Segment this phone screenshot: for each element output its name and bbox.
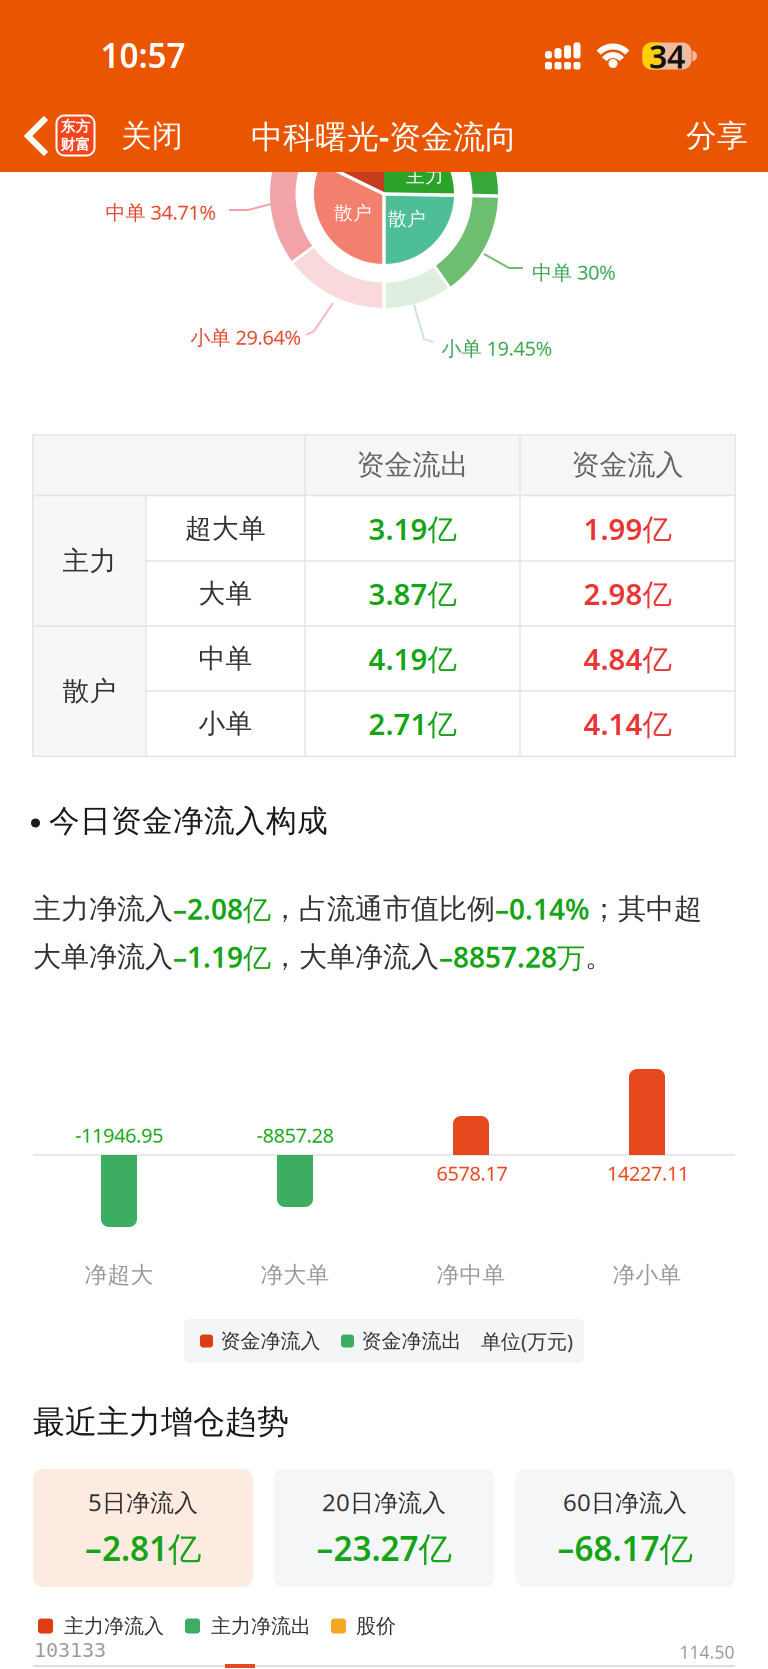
staticText: 大单净流入: [33, 940, 173, 974]
staticText: 中科曙光-资金流向: [251, 115, 517, 157]
staticText: 关闭: [121, 117, 183, 155]
staticText: 中单 30%: [532, 259, 616, 285]
staticText: 净超大: [84, 1261, 153, 1289]
staticText: –0.14%: [495, 890, 590, 928]
staticText: 单位(万元): [481, 1328, 573, 1354]
staticText: 34: [649, 35, 685, 77]
staticText: 中单: [198, 642, 252, 675]
staticText: 2.71亿: [368, 704, 456, 743]
staticText: 主力净流入: [33, 892, 173, 926]
button[interactable]: Back: [18, 108, 58, 164]
staticText: 散户: [334, 201, 372, 224]
staticText: –68.17亿: [557, 1526, 692, 1570]
button[interactable]: 东方财富: [56, 115, 94, 155]
staticText: 散户: [62, 675, 116, 707]
staticText: 超大单: [185, 512, 266, 545]
staticText: 净中单: [436, 1261, 505, 1289]
staticText: –8857.28万: [439, 938, 585, 976]
staticText: –23.27亿: [316, 1526, 451, 1570]
staticText: 4.84亿: [583, 639, 671, 678]
staticText: 2.98亿: [583, 574, 671, 613]
staticText: 103133: [34, 1638, 106, 1662]
staticText: 今日资金净流入构成: [49, 802, 328, 840]
staticText: 分享: [686, 117, 748, 155]
button[interactable]: 5日净流入: [33, 1469, 253, 1587]
staticText: 小单: [198, 707, 252, 740]
staticText: 股价: [356, 1614, 396, 1638]
button[interactable]: 分享: [672, 108, 762, 164]
staticText: 3.19亿: [368, 509, 456, 548]
staticText: –2.08亿: [173, 890, 271, 928]
staticText: 散户: [388, 207, 426, 230]
staticText: 资金净流出: [361, 1329, 461, 1353]
staticText: -8857.28: [256, 1122, 333, 1148]
staticText: 主力净流入: [64, 1614, 164, 1638]
staticText: 最近主力增仓趋势: [33, 1402, 289, 1442]
staticText: 净大单: [260, 1261, 329, 1289]
staticText: ，大单净流入: [271, 940, 439, 974]
staticText: 资金流出: [356, 448, 468, 482]
staticText: 中单 34.71%: [105, 199, 216, 225]
staticText: –2.81亿: [85, 1526, 201, 1570]
staticText: 14227.11: [607, 1160, 689, 1186]
staticText: 114.50: [679, 1640, 734, 1663]
button[interactable]: 关闭: [107, 108, 197, 164]
staticText: 财富: [60, 135, 90, 153]
staticText: 主力净流出: [211, 1614, 311, 1638]
staticText: 主力: [62, 545, 116, 577]
staticText: 6578.17: [436, 1160, 507, 1186]
staticText: 小单 29.64%: [190, 324, 301, 350]
staticText: –1.19亿: [173, 938, 271, 976]
staticText: 资金流入: [571, 448, 683, 482]
staticText: ；其中超: [590, 892, 702, 926]
staticText: 净小单: [612, 1261, 681, 1289]
staticText: ，占流通市值比例: [271, 892, 495, 926]
staticText: 主力: [406, 164, 444, 187]
staticText: 资金净流入: [220, 1329, 320, 1353]
staticText: 20日净流入: [322, 1486, 446, 1518]
staticText: 1.99亿: [583, 509, 671, 548]
staticText: -11946.95: [75, 1122, 163, 1148]
staticText: 3.87亿: [368, 574, 456, 613]
staticText: 大单: [198, 577, 252, 610]
staticText: 东方: [60, 117, 90, 135]
staticText: 60日净流入: [563, 1486, 687, 1518]
staticText: 4.19亿: [368, 639, 456, 678]
staticText: 10:57: [100, 33, 185, 77]
staticText: 。: [585, 940, 613, 974]
button[interactable]: 60日净流入: [515, 1469, 735, 1587]
staticText: 5日净流入: [88, 1486, 198, 1518]
staticText: 4.14亿: [583, 704, 671, 743]
button[interactable]: 20日净流入: [274, 1469, 494, 1587]
staticText: 小单 19.45%: [441, 335, 552, 361]
